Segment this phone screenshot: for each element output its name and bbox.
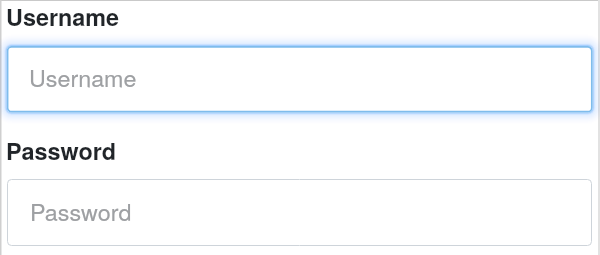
staticText: Username xyxy=(29,60,137,93)
staticText: Password xyxy=(30,194,132,227)
staticText: Password xyxy=(6,134,117,168)
staticText: Username xyxy=(6,0,120,34)
button[interactable]: Username text field xyxy=(8,47,592,112)
button[interactable]: Password text field xyxy=(8,180,592,246)
